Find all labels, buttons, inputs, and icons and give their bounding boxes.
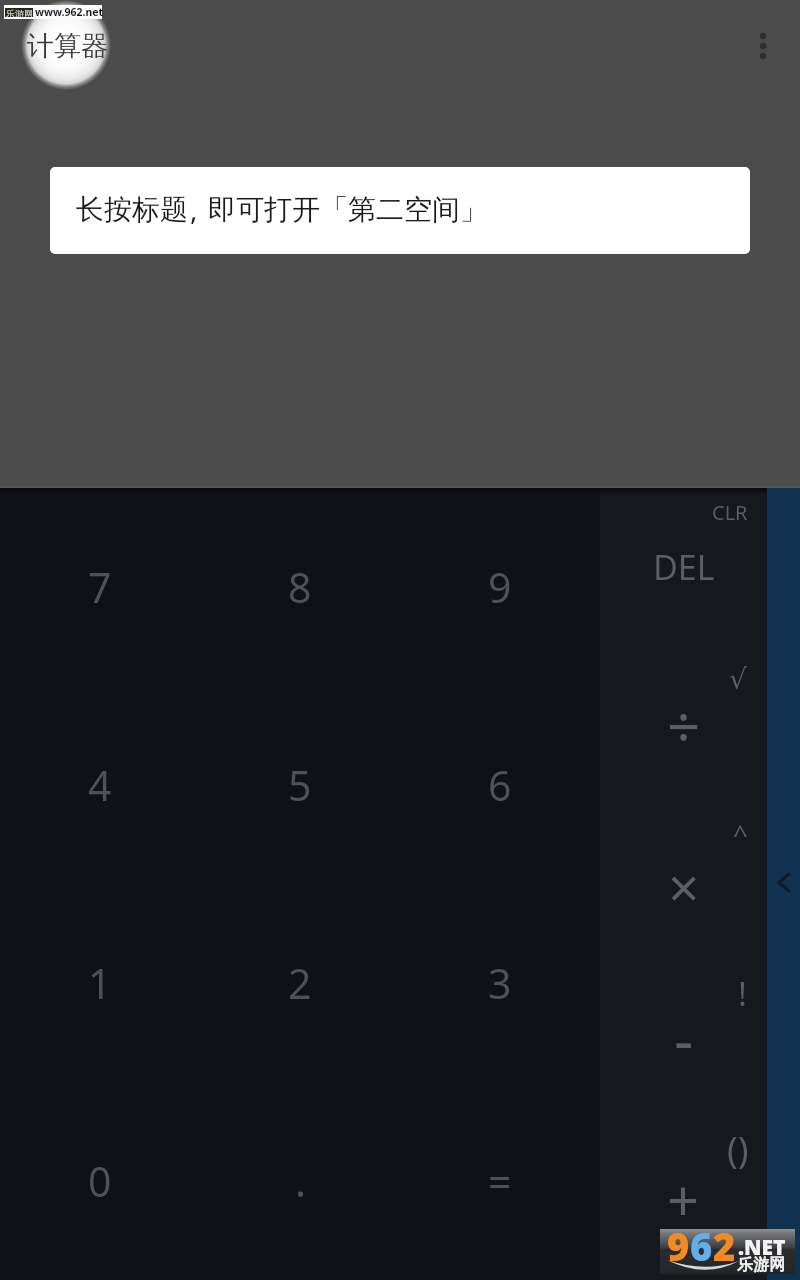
button[interactable]: 7 [0, 488, 200, 686]
staticText: 3 [488, 955, 512, 1011]
button[interactable]: 5 [200, 686, 400, 884]
staticText: 9 [488, 559, 512, 615]
staticText: 4 [88, 757, 112, 813]
staticText: 2 [713, 1220, 736, 1265]
staticText: × [668, 849, 700, 924]
staticText: 1 [88, 955, 112, 1011]
staticText: 8 [288, 559, 312, 615]
staticText: 乐游网 [737, 1255, 785, 1275]
staticText: - [674, 998, 694, 1080]
staticText: 7 [88, 559, 112, 615]
staticText: www.962.net [35, 5, 104, 19]
button[interactable]: More options [739, 22, 787, 70]
staticText: 6 [690, 1220, 713, 1265]
staticText: 长按标题 [76, 192, 188, 227]
button[interactable]: 9 [400, 488, 600, 686]
staticText: = [488, 1153, 512, 1209]
staticText: 5 [288, 757, 312, 813]
staticText: 即可打开「第二空间」 [208, 192, 488, 227]
button[interactable]: 0 [0, 1082, 200, 1280]
button[interactable]: 6 [400, 686, 600, 884]
staticText: 乐游网 [6, 8, 33, 17]
staticText: 2 [288, 955, 312, 1011]
button[interactable]: 计算器 [27, 29, 108, 63]
staticText: ÷ [667, 686, 701, 765]
staticText: , [190, 190, 198, 228]
staticText: 6 [488, 757, 512, 813]
staticText: . [295, 1153, 306, 1209]
staticText: 0 [88, 1153, 112, 1209]
staticText: √ [729, 663, 747, 696]
staticText: ! [738, 971, 747, 1016]
staticText: DEL [653, 544, 715, 590]
button[interactable]: 3 [400, 884, 600, 1082]
staticText: .NET [738, 1233, 786, 1262]
button[interactable]: Expand panel [767, 844, 800, 916]
staticText: 9 [667, 1220, 690, 1265]
button[interactable]: 8 [200, 488, 400, 686]
button[interactable]: + [600, 1120, 767, 1278]
button[interactable]: × [600, 804, 767, 962]
staticText: CLR [712, 499, 748, 526]
button[interactable]: 1 [0, 884, 200, 1082]
button[interactable]: ÷ [600, 646, 767, 804]
button[interactable]: 2 [200, 884, 400, 1082]
button[interactable]: - [600, 962, 767, 1120]
button[interactable]: = [400, 1082, 600, 1280]
staticText: + [667, 1161, 700, 1237]
staticText: () [727, 1125, 749, 1174]
button[interactable]: 4 [0, 686, 200, 884]
button[interactable]: 长按标题 [50, 167, 750, 254]
staticText: 计算器 [27, 29, 108, 63]
staticText: ^ [733, 816, 748, 851]
button[interactable]: DEL [600, 488, 767, 646]
